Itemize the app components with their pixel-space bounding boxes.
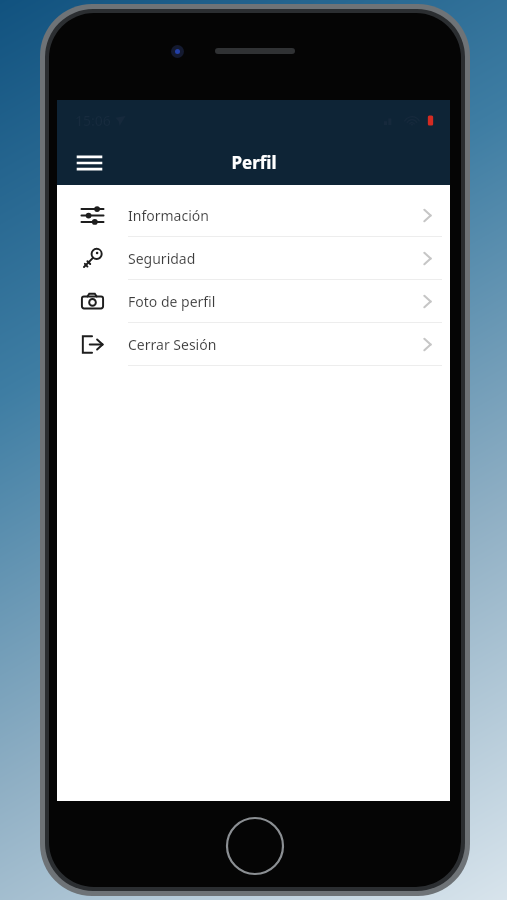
staticText: Foto de perfil bbox=[128, 292, 412, 311]
button[interactable]: Seguridad bbox=[57, 237, 450, 279]
button[interactable]: Open navigation menu bbox=[69, 143, 109, 183]
staticText: Información bbox=[128, 206, 412, 225]
staticText: Perfil bbox=[231, 151, 277, 174]
button[interactable]: Foto de perfil bbox=[57, 280, 450, 322]
staticText: Seguridad bbox=[128, 249, 412, 268]
button[interactable]: Información bbox=[57, 194, 450, 236]
button[interactable]: Cerrar Sesión bbox=[57, 323, 450, 365]
staticText: Cerrar Sesión bbox=[128, 335, 412, 354]
